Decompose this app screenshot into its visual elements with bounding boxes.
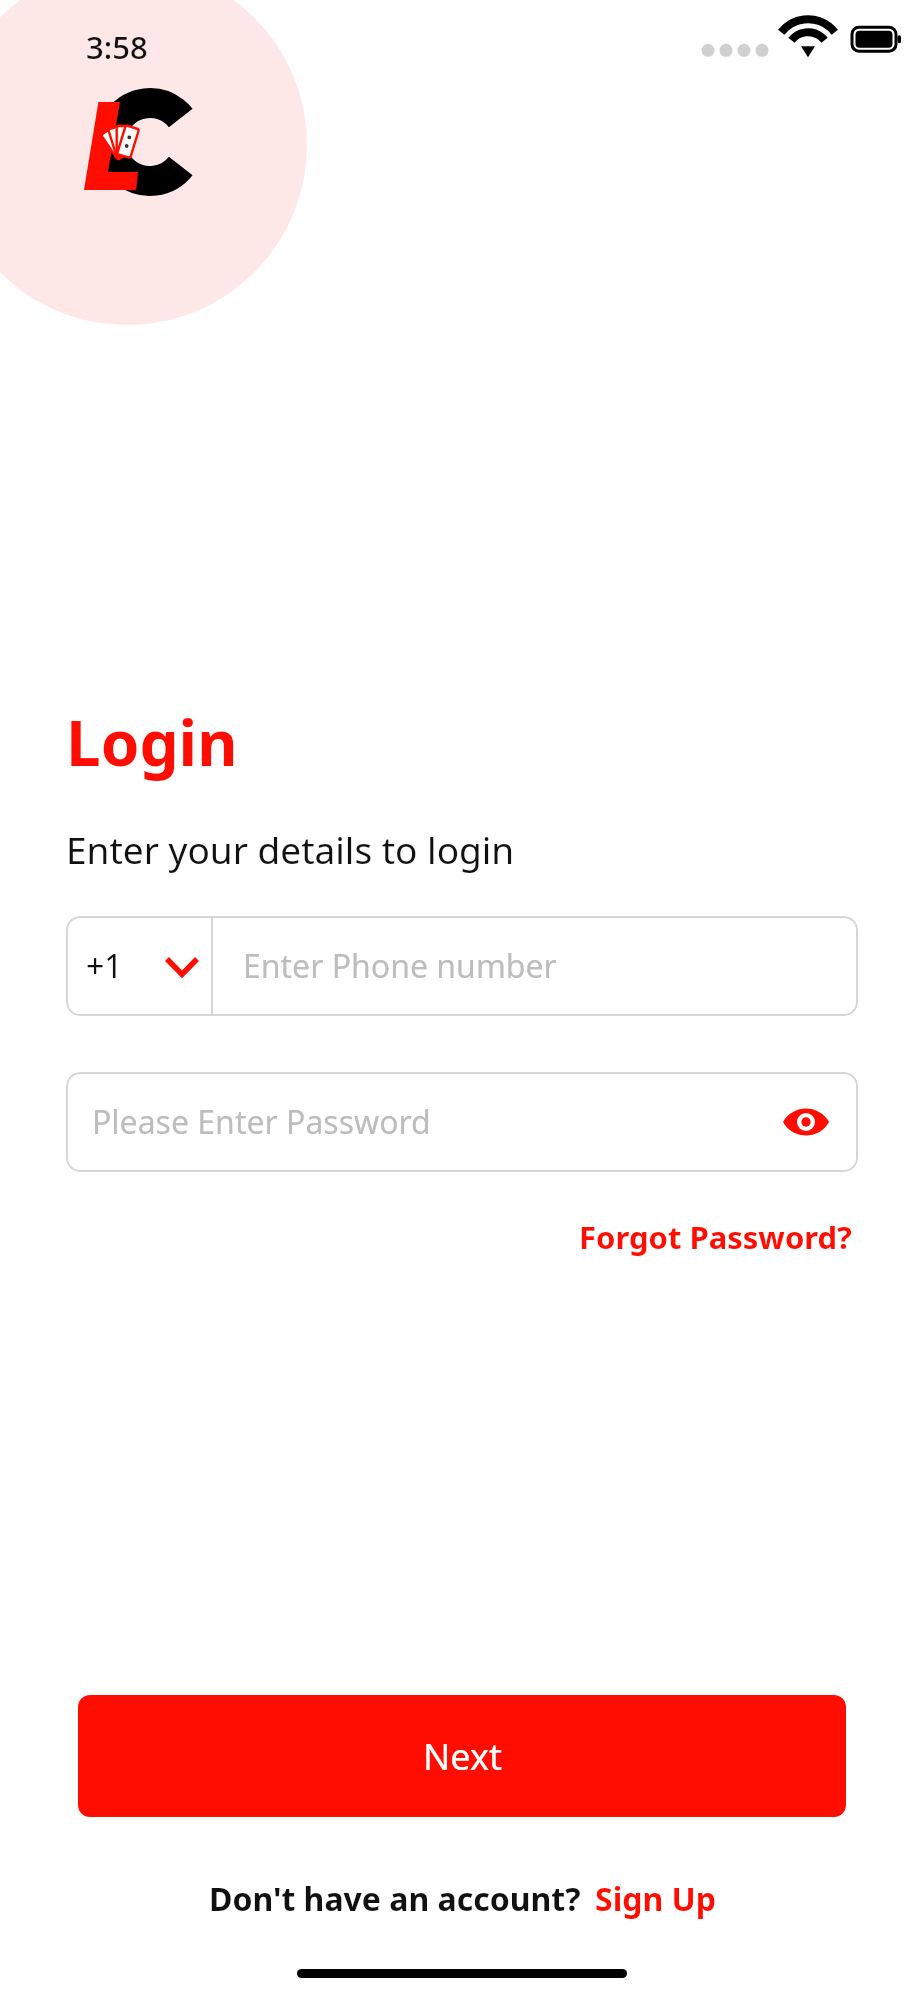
button[interactable]: Forgot Password?: [573, 1210, 858, 1264]
staticText: Sign Up: [595, 1877, 716, 1921]
staticText: Next: [423, 1732, 502, 1781]
button[interactable]: Sign Up: [595, 1877, 716, 1921]
staticText: Enter Phone number: [243, 944, 557, 988]
staticText: 3:58: [86, 26, 148, 68]
button[interactable]: Show password: [780, 1096, 832, 1148]
button[interactable]: Next: [78, 1695, 846, 1817]
staticText: Don't have an account?: [209, 1877, 581, 1921]
staticText: Forgot Password?: [579, 1216, 852, 1258]
staticText: Please Enter Password: [92, 1100, 780, 1144]
other: Logo: [78, 92, 198, 192]
staticText: Login: [66, 700, 238, 784]
staticText: +1: [86, 944, 123, 988]
staticText: Enter your details to login: [66, 824, 515, 874]
button[interactable]: +1: [66, 916, 211, 1016]
button[interactable]: Enter Phone number: [213, 916, 858, 1016]
button[interactable]: Please Enter Password: [66, 1072, 858, 1172]
